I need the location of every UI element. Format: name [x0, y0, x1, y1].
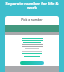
staticText: Separate number for life & work [5, 1, 59, 10]
staticText: Pick a number [21, 18, 43, 22]
button[interactable]: Continue [20, 61, 44, 65]
